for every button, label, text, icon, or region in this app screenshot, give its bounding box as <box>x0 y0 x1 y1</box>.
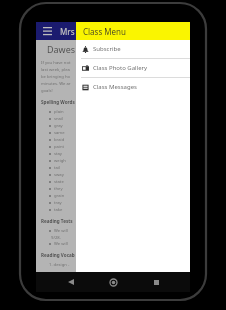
button[interactable]: Back <box>63 274 79 290</box>
button[interactable]: Class Photo Gallery <box>76 59 190 77</box>
staticText: take <box>54 207 63 213</box>
staticText: Spelling Words <box>41 99 75 105</box>
staticText: be bringing ho <box>41 74 71 80</box>
staticText: We will <box>54 241 68 247</box>
staticText: Dawes D <box>47 43 84 55</box>
staticText: 9/28. <box>51 235 61 241</box>
staticText: Class Messages <box>93 83 137 91</box>
staticText: sway <box>54 172 64 178</box>
button[interactable]: Class Messages <box>76 78 190 96</box>
staticText: Class Photo Gallery <box>93 64 148 72</box>
staticText: plain <box>54 109 64 115</box>
staticText: Class Menu <box>83 26 127 37</box>
staticText: Mrs <box>60 26 75 37</box>
staticText: braid <box>54 137 65 143</box>
staticText: gray <box>54 123 63 129</box>
staticText: tray <box>54 200 62 206</box>
staticText: We will <box>54 228 68 234</box>
staticText: they <box>54 186 63 192</box>
button[interactable]: Open navigation menu <box>38 22 56 40</box>
staticText: minutes. We ar <box>41 81 71 87</box>
button[interactable]: Home <box>105 274 121 290</box>
staticText: If you have not <box>41 60 71 66</box>
staticText: stay <box>54 151 63 157</box>
staticText: same <box>54 130 65 136</box>
staticText: grain <box>54 193 65 199</box>
staticText: last week, plea <box>41 67 70 73</box>
staticText: snail <box>54 116 64 122</box>
staticText: Reading Vocab <box>41 252 75 258</box>
staticText: paint <box>54 144 65 150</box>
staticText: 1. design - <box>49 262 70 268</box>
staticText: Subscribe <box>93 45 121 53</box>
staticText: tail <box>54 165 61 171</box>
staticText: Reading Tests <box>41 218 73 224</box>
staticText: weigh <box>54 158 66 164</box>
button[interactable]: Recent apps <box>148 274 164 290</box>
staticText: goals! <box>41 88 53 94</box>
staticText: state <box>54 179 64 185</box>
button[interactable]: Subscribe <box>76 40 190 58</box>
